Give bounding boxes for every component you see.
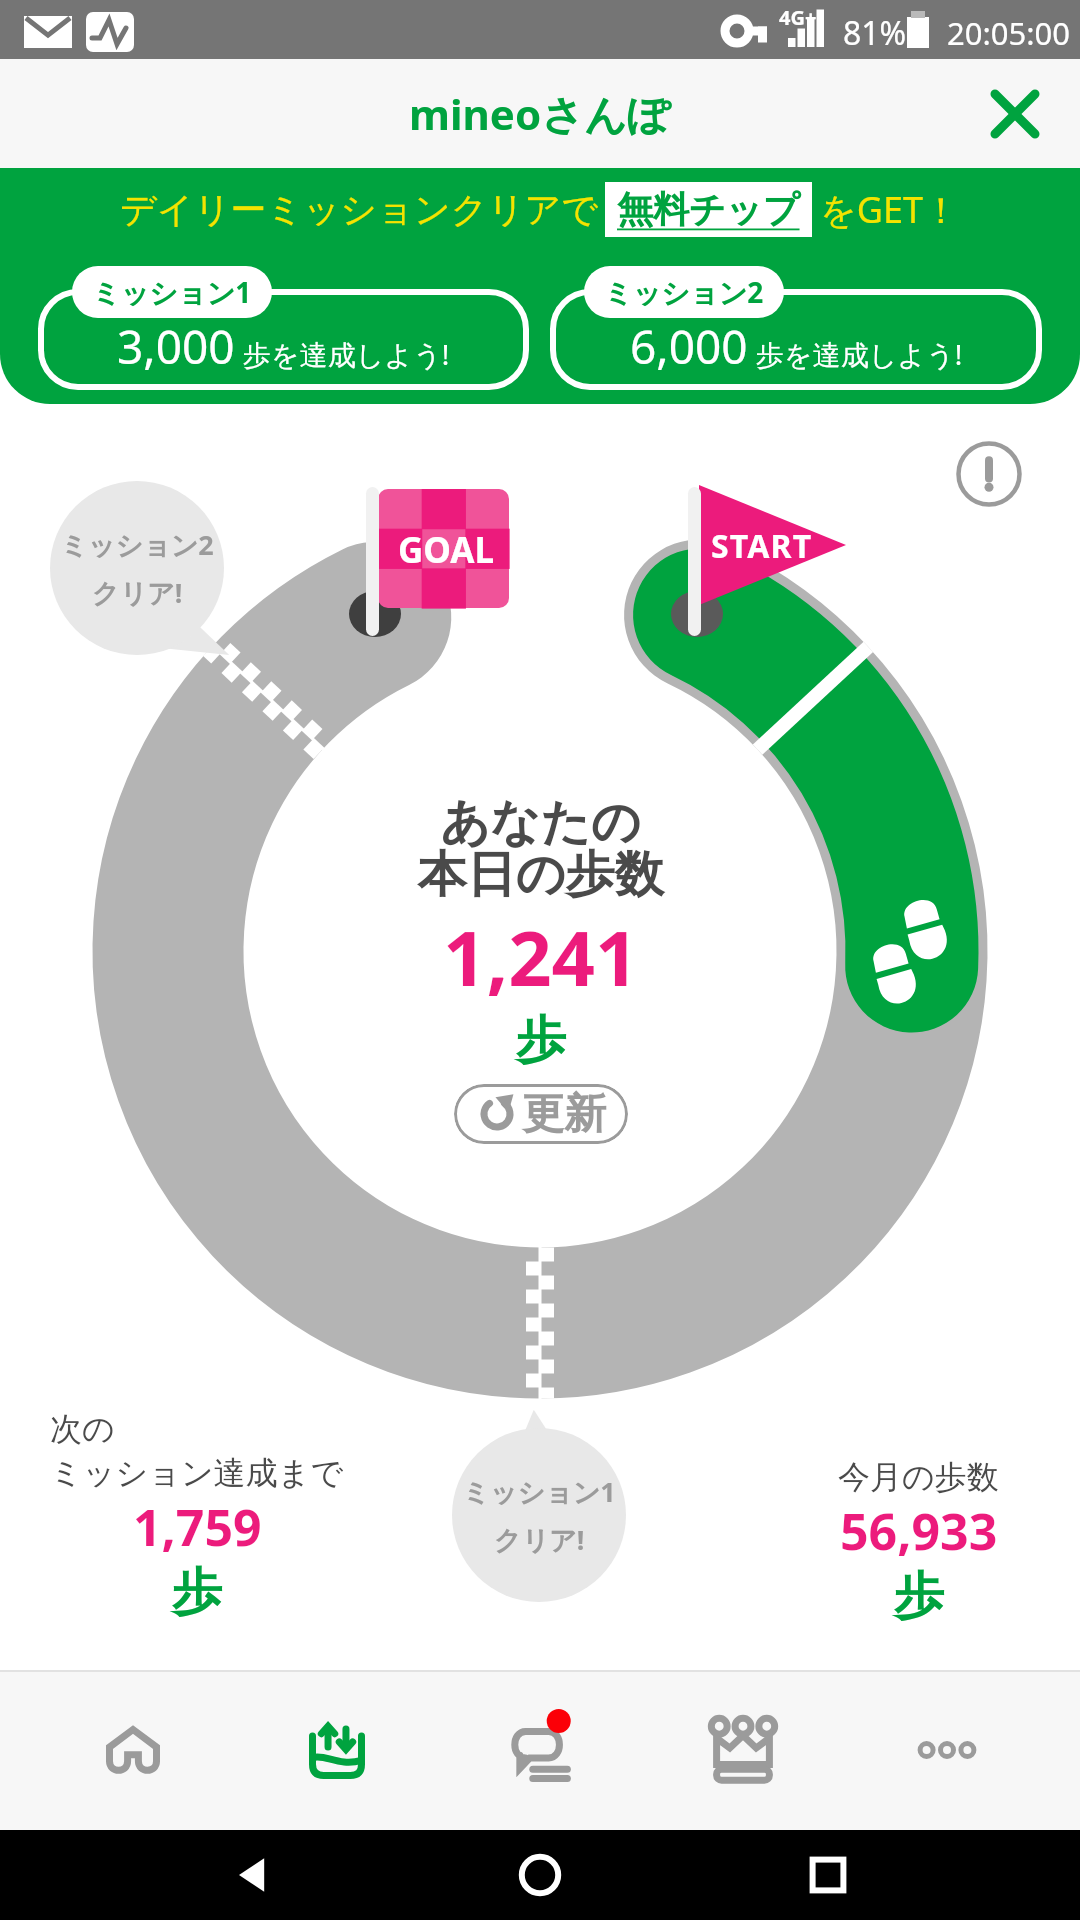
staticText: をGET！ <box>820 185 960 234</box>
staticText: 3,000 <box>117 315 235 378</box>
staticText: 歩を達成しよう! <box>243 335 450 373</box>
button[interactable]: More <box>877 1680 1017 1820</box>
button[interactable]: Recents <box>793 1840 863 1910</box>
staticText: ミッション1 <box>92 273 252 311</box>
staticText: 歩 <box>172 1561 222 1624</box>
staticText: 今月の歩数 <box>838 1457 999 1497</box>
staticText: 歩 <box>894 1565 944 1628</box>
staticText: あなたの 本日の歩数 <box>417 792 664 905</box>
button[interactable]: Messages <box>470 1680 610 1820</box>
staticText: ミッション1 クリア! <box>462 1473 616 1558</box>
button[interactable]: Back <box>218 1840 288 1910</box>
staticText: 4G+ <box>779 4 817 31</box>
staticText: デイリーミッションクリアで <box>120 187 599 232</box>
staticText: 20:05:00 <box>947 12 1071 54</box>
button[interactable]: 6,000 <box>550 266 1042 390</box>
staticText: START <box>711 524 813 568</box>
staticText: 歩を達成しよう! <box>756 335 963 373</box>
staticText: 81% <box>843 11 907 55</box>
button[interactable]: Steps <box>267 1680 407 1820</box>
staticText: 歩 <box>516 1009 566 1072</box>
staticText: 無料チップ <box>617 187 800 232</box>
button[interactable]: Rank <box>673 1680 813 1820</box>
staticText: GOAL <box>398 526 495 574</box>
staticText: 1,759 <box>133 1493 262 1561</box>
staticText: 6,000 <box>630 315 748 378</box>
button[interactable]: Home <box>505 1840 575 1910</box>
button[interactable]: Close <box>986 85 1044 143</box>
staticText: mineoさんぽ <box>409 85 671 142</box>
staticText: ミッション2 クリア! <box>60 526 214 611</box>
button[interactable]: 3,000 <box>38 266 529 390</box>
staticText: ミッション2 <box>604 273 764 311</box>
button[interactable]: Home <box>63 1680 203 1820</box>
staticText: 56,933 <box>840 1497 998 1565</box>
button[interactable]: 更新 <box>454 1084 628 1144</box>
staticText: 更新 <box>522 1088 606 1141</box>
staticText: 次の ミッション達成まで <box>50 1409 344 1493</box>
button[interactable]: Information <box>956 441 1022 507</box>
staticText: 1,241 <box>443 905 639 1009</box>
